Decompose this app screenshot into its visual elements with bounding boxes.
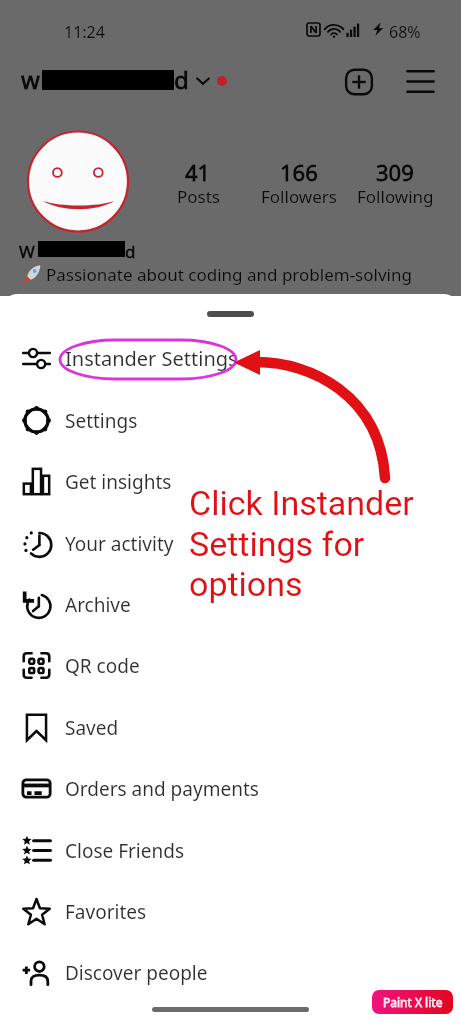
button[interactable]: Get insights — [0, 451, 461, 512]
staticText: Discover people — [65, 960, 208, 986]
button[interactable]: QR code — [0, 635, 461, 696]
button[interactable]: w — [18, 58, 233, 92]
button[interactable]: Settings — [0, 390, 461, 451]
staticText: Favorites — [65, 899, 147, 925]
staticText: QR code — [65, 653, 140, 679]
button[interactable]: Favorites — [0, 881, 461, 942]
staticText: 309 — [376, 157, 414, 187]
staticText: d — [174, 63, 189, 96]
staticText: 11:24 — [64, 21, 105, 43]
button[interactable]: 41 — [138, 157, 258, 210]
staticText: 41 — [185, 157, 211, 187]
staticText: options — [189, 564, 303, 604]
staticText: 68% — [389, 21, 421, 43]
staticText: w — [21, 63, 40, 96]
staticText: Saved — [65, 715, 119, 741]
staticText: Archive — [65, 592, 131, 618]
button[interactable]: Close Friends — [0, 820, 461, 881]
button[interactable]: Your activity — [0, 513, 461, 574]
staticText: Settings for — [189, 524, 365, 564]
staticText: Following — [357, 185, 434, 208]
staticText: Click Instander — [189, 483, 414, 523]
staticText: Close Friends — [65, 838, 185, 864]
button[interactable]: Saved — [0, 697, 461, 758]
staticText: 166 — [280, 157, 318, 187]
staticText: Followers — [261, 185, 337, 208]
button[interactable]: Orders and payments — [0, 758, 461, 819]
button[interactable]: 309 — [335, 157, 455, 210]
staticText: Settings — [65, 408, 138, 434]
staticText: Instander Settings — [65, 345, 238, 372]
staticText: d — [125, 240, 136, 262]
button[interactable]: Archive — [0, 574, 461, 635]
staticText: Orders and payments — [65, 776, 259, 802]
staticText: Posts — [177, 185, 220, 208]
button[interactable]: Discover people — [0, 942, 461, 1003]
staticText: Your activity — [65, 531, 174, 557]
button[interactable]: Menu — [400, 61, 440, 101]
button[interactable]: Instander Settings — [0, 328, 461, 389]
staticText: Get insights — [65, 469, 172, 495]
button[interactable]: New post — [338, 61, 380, 103]
button[interactable]: 166 — [239, 157, 359, 210]
staticText: Paint X lite — [383, 994, 443, 1010]
staticText: Passionate about coding and problem-solv… — [46, 263, 412, 286]
staticText: W — [19, 240, 35, 262]
